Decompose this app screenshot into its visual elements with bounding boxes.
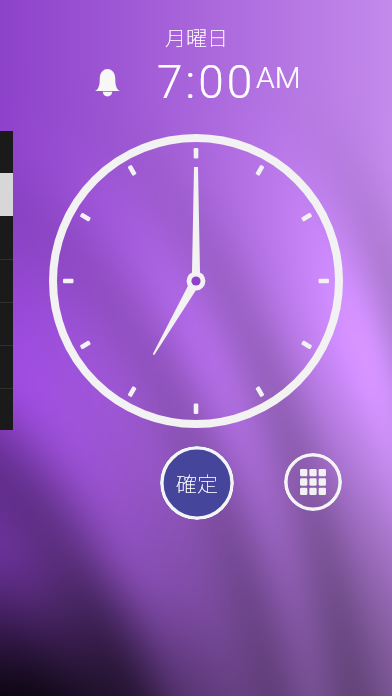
staticText: 確定 [176, 468, 218, 498]
staticText: 月曜日 [165, 22, 228, 52]
staticText: 7:00 [157, 55, 256, 109]
button[interactable]: 確定 [160, 446, 234, 520]
staticText: AM [256, 60, 301, 95]
button[interactable]: Open app drawer [284, 453, 342, 511]
